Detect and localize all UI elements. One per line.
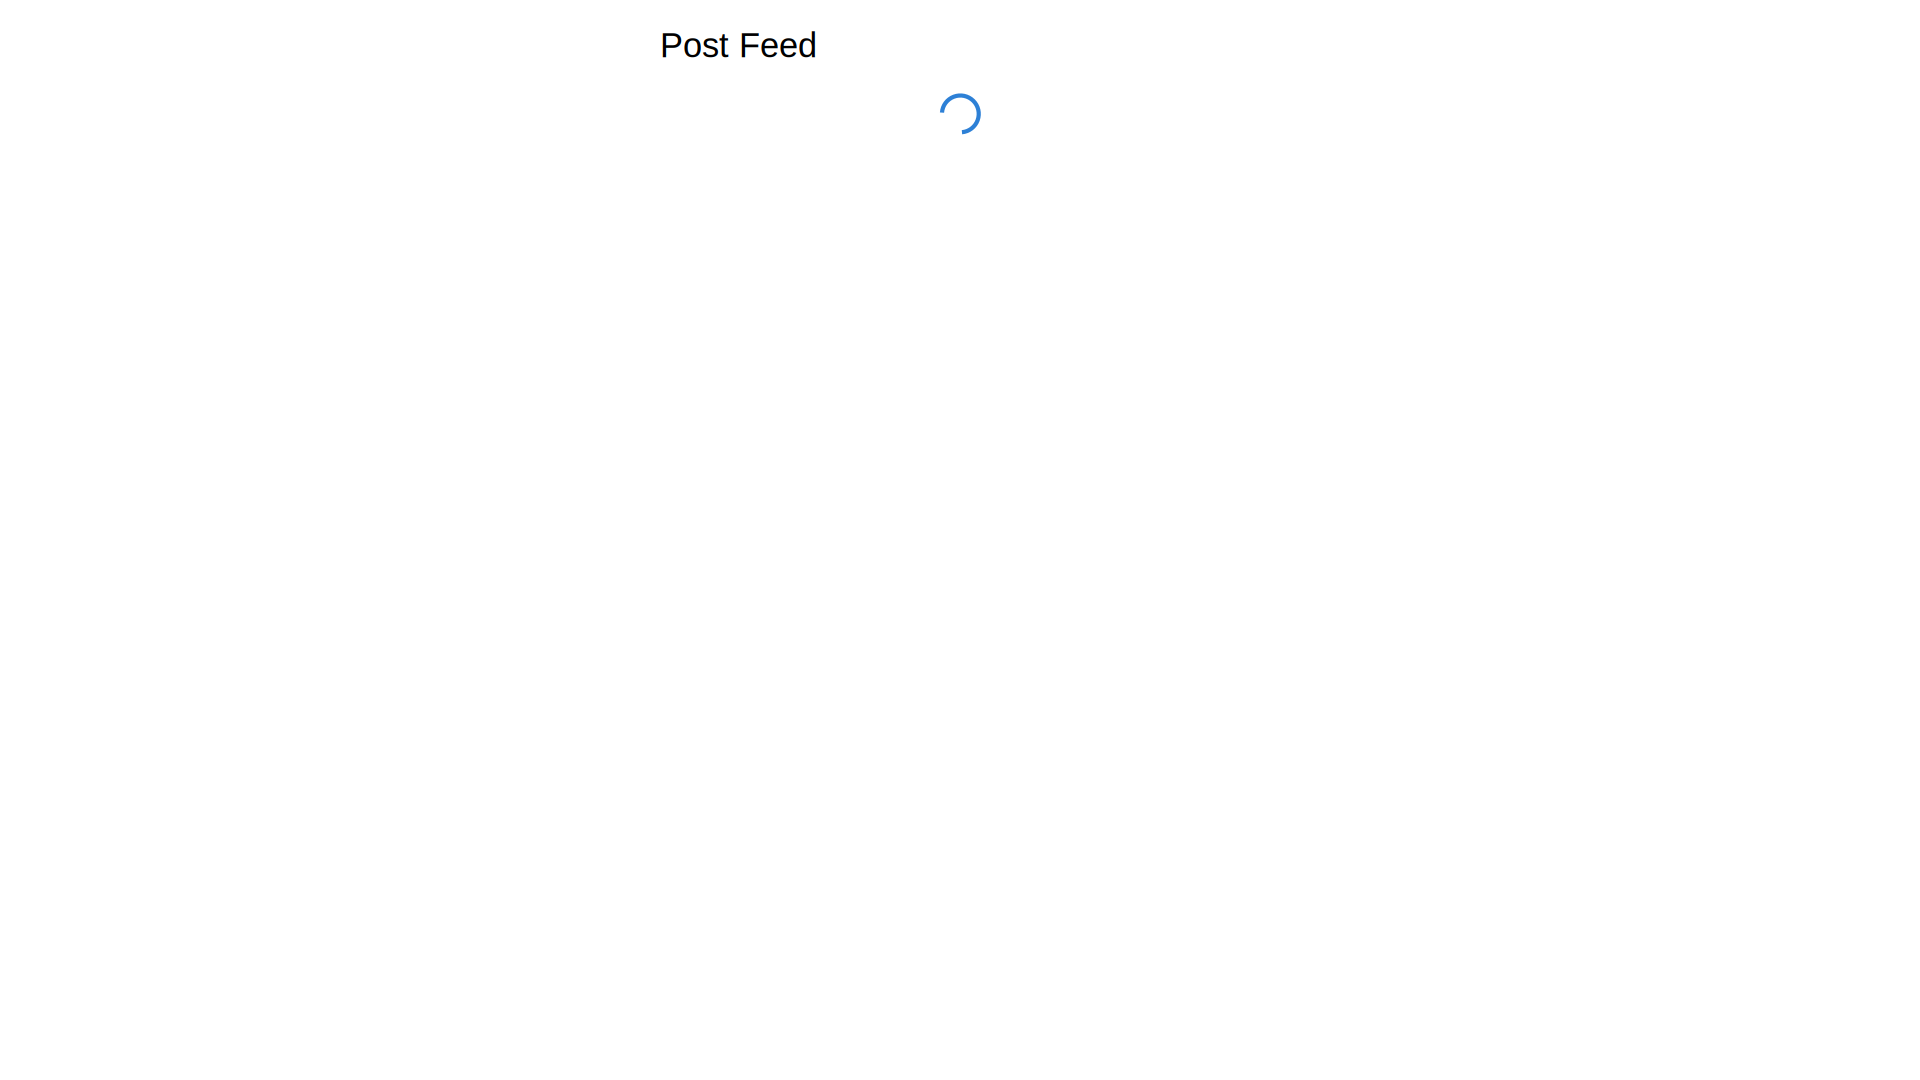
staticText: Post Feed: [660, 26, 817, 64]
